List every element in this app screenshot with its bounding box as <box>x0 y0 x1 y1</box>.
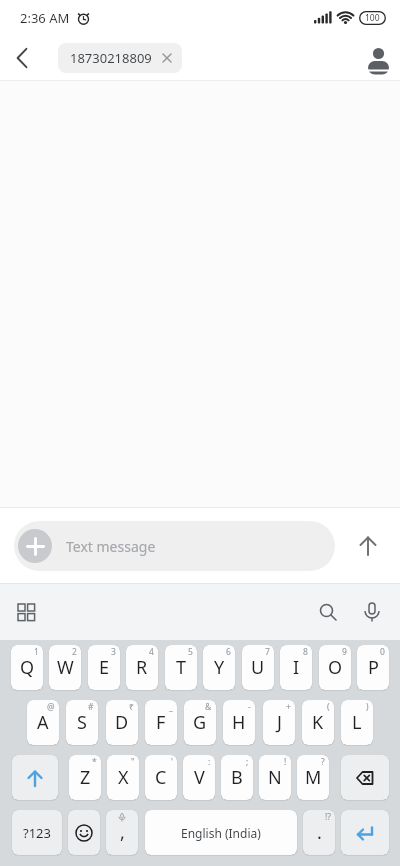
staticText: P <box>368 655 379 680</box>
staticText: 8 <box>303 646 308 658</box>
staticText: @ <box>47 701 55 713</box>
button[interactable]: 4 <box>126 645 158 690</box>
staticText: 2 <box>72 646 77 658</box>
button[interactable]: : <box>183 755 215 800</box>
button[interactable]: ?123 <box>12 810 62 855</box>
button[interactable]: ₹ <box>106 700 138 745</box>
staticText: 2:36 AM <box>20 9 70 27</box>
staticText: ( <box>327 701 330 713</box>
button[interactable]: & <box>184 700 216 745</box>
button[interactable]: _ <box>145 700 177 745</box>
staticText: * <box>92 756 97 768</box>
button[interactable] <box>335 508 400 583</box>
button[interactable] <box>355 36 399 80</box>
staticText: K <box>312 710 324 735</box>
staticText: H <box>232 710 246 735</box>
staticText: G <box>193 710 207 735</box>
staticText: 6 <box>226 646 231 658</box>
button[interactable] <box>68 810 100 855</box>
button[interactable]: " <box>107 755 139 800</box>
button[interactable]: # <box>66 700 98 745</box>
button[interactable]: ' <box>145 755 177 800</box>
staticText: W <box>57 655 74 680</box>
staticText: J <box>277 710 282 735</box>
staticText: B <box>231 765 243 790</box>
button[interactable]: , <box>106 810 138 855</box>
staticText: F <box>156 710 166 735</box>
button[interactable]: 8 <box>280 645 312 690</box>
button[interactable] <box>310 594 346 630</box>
staticText: _ <box>169 701 173 713</box>
button[interactable]: English (India) <box>145 810 297 855</box>
button[interactable]: ) <box>341 700 373 745</box>
button[interactable]: 1 <box>11 645 43 690</box>
staticText: 7 <box>265 646 270 658</box>
button[interactable]: 3 <box>88 645 120 690</box>
staticText: English (India) <box>181 825 261 841</box>
staticText: ' <box>171 756 173 768</box>
button[interactable]: 18730218809 <box>58 43 182 73</box>
button[interactable]: 6 <box>203 645 235 690</box>
button[interactable]: ( <box>302 700 334 745</box>
staticText: V <box>194 765 205 790</box>
button[interactable]: 0 <box>357 645 389 690</box>
staticText: Q <box>20 655 35 680</box>
staticText: 100 <box>365 12 380 24</box>
staticText: Text message <box>66 537 156 556</box>
staticText: C <box>155 765 167 790</box>
button[interactable] <box>341 755 389 800</box>
staticText: Y <box>214 655 225 680</box>
staticText: S <box>77 710 87 735</box>
staticText: ? <box>321 756 325 768</box>
staticText: D <box>115 710 129 735</box>
staticText: O <box>328 655 343 680</box>
button[interactable]: Text message <box>14 521 335 571</box>
button[interactable]: ; <box>221 755 253 800</box>
button[interactable]: 5 <box>165 645 197 690</box>
staticText: 3 <box>111 646 116 658</box>
staticText: X <box>118 765 129 790</box>
button[interactable] <box>18 529 52 563</box>
staticText: 0 <box>380 646 385 658</box>
button[interactable] <box>341 810 389 855</box>
staticText: !? <box>325 811 331 823</box>
button[interactable]: ? <box>297 755 329 800</box>
button[interactable]: ! <box>259 755 291 800</box>
staticText: L <box>352 710 362 735</box>
staticText: & <box>205 701 212 713</box>
staticText: R <box>136 655 148 680</box>
staticText: 5 <box>188 646 193 658</box>
button[interactable] <box>0 36 48 80</box>
button[interactable]: !? <box>303 810 335 855</box>
staticText: I <box>293 655 300 680</box>
button[interactable]: 7 <box>242 645 274 690</box>
button[interactable]: 2 <box>49 645 81 690</box>
staticText: T <box>176 655 187 680</box>
staticText: - <box>248 701 251 713</box>
button[interactable]: + <box>263 700 295 745</box>
button[interactable]: * <box>69 755 101 800</box>
staticText: : <box>208 756 211 768</box>
staticText: " <box>131 756 135 768</box>
staticText: # <box>88 701 94 713</box>
button[interactable] <box>12 755 58 800</box>
staticText: ; <box>246 756 249 768</box>
staticText: 1 <box>34 646 39 658</box>
staticText: ?123 <box>23 824 51 842</box>
staticText: + <box>286 701 291 713</box>
button[interactable]: - <box>223 700 255 745</box>
button[interactable] <box>8 594 44 630</box>
staticText: U <box>251 655 265 680</box>
staticText: Z <box>80 765 91 790</box>
staticText: ₹ <box>129 701 134 713</box>
button[interactable] <box>354 594 390 630</box>
staticText: 9 <box>342 646 347 658</box>
staticText: E <box>99 655 110 680</box>
staticText: N <box>268 765 282 790</box>
staticText: ) <box>366 701 369 713</box>
button[interactable]: @ <box>27 700 59 745</box>
button[interactable]: 9 <box>319 645 351 690</box>
staticText: ! <box>284 756 287 768</box>
staticText: , <box>120 820 125 845</box>
staticText: A <box>37 710 49 735</box>
